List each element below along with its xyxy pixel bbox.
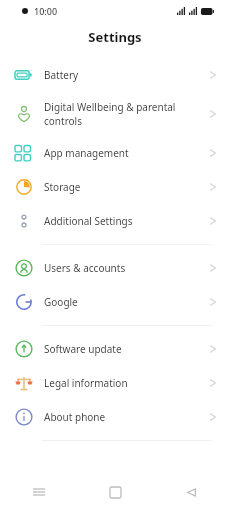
button[interactable]: Storage [0,170,229,204]
button[interactable]: Recents [0,472,77,512]
staticText: 10:00 [34,5,58,17]
button[interactable]: Legal information [0,366,229,400]
button[interactable]: Google [0,285,229,319]
button[interactable]: Battery [0,58,229,92]
button[interactable]: Digital Wellbeing & parental controls [0,92,229,136]
button[interactable]: Users & accounts [0,251,229,285]
button[interactable]: Home [77,472,153,512]
staticText: Digital Wellbeing & parental controls [44,100,209,128]
button[interactable]: Back [153,472,229,512]
staticText: App management [44,146,209,160]
staticText: Software update [44,342,209,356]
staticText: Additional Settings [44,214,209,228]
staticText: Users & accounts [44,261,209,275]
button[interactable]: Additional Settings [0,204,229,238]
button[interactable]: Software update [0,332,229,366]
staticText: About phone [44,410,209,424]
staticText: Settings [88,28,142,46]
staticText: Legal information [44,376,209,390]
staticText: Storage [44,180,209,194]
staticText: Google [44,295,209,309]
staticText: Battery [44,68,209,82]
button[interactable]: About phone [0,400,229,434]
button[interactable]: App management [0,136,229,170]
